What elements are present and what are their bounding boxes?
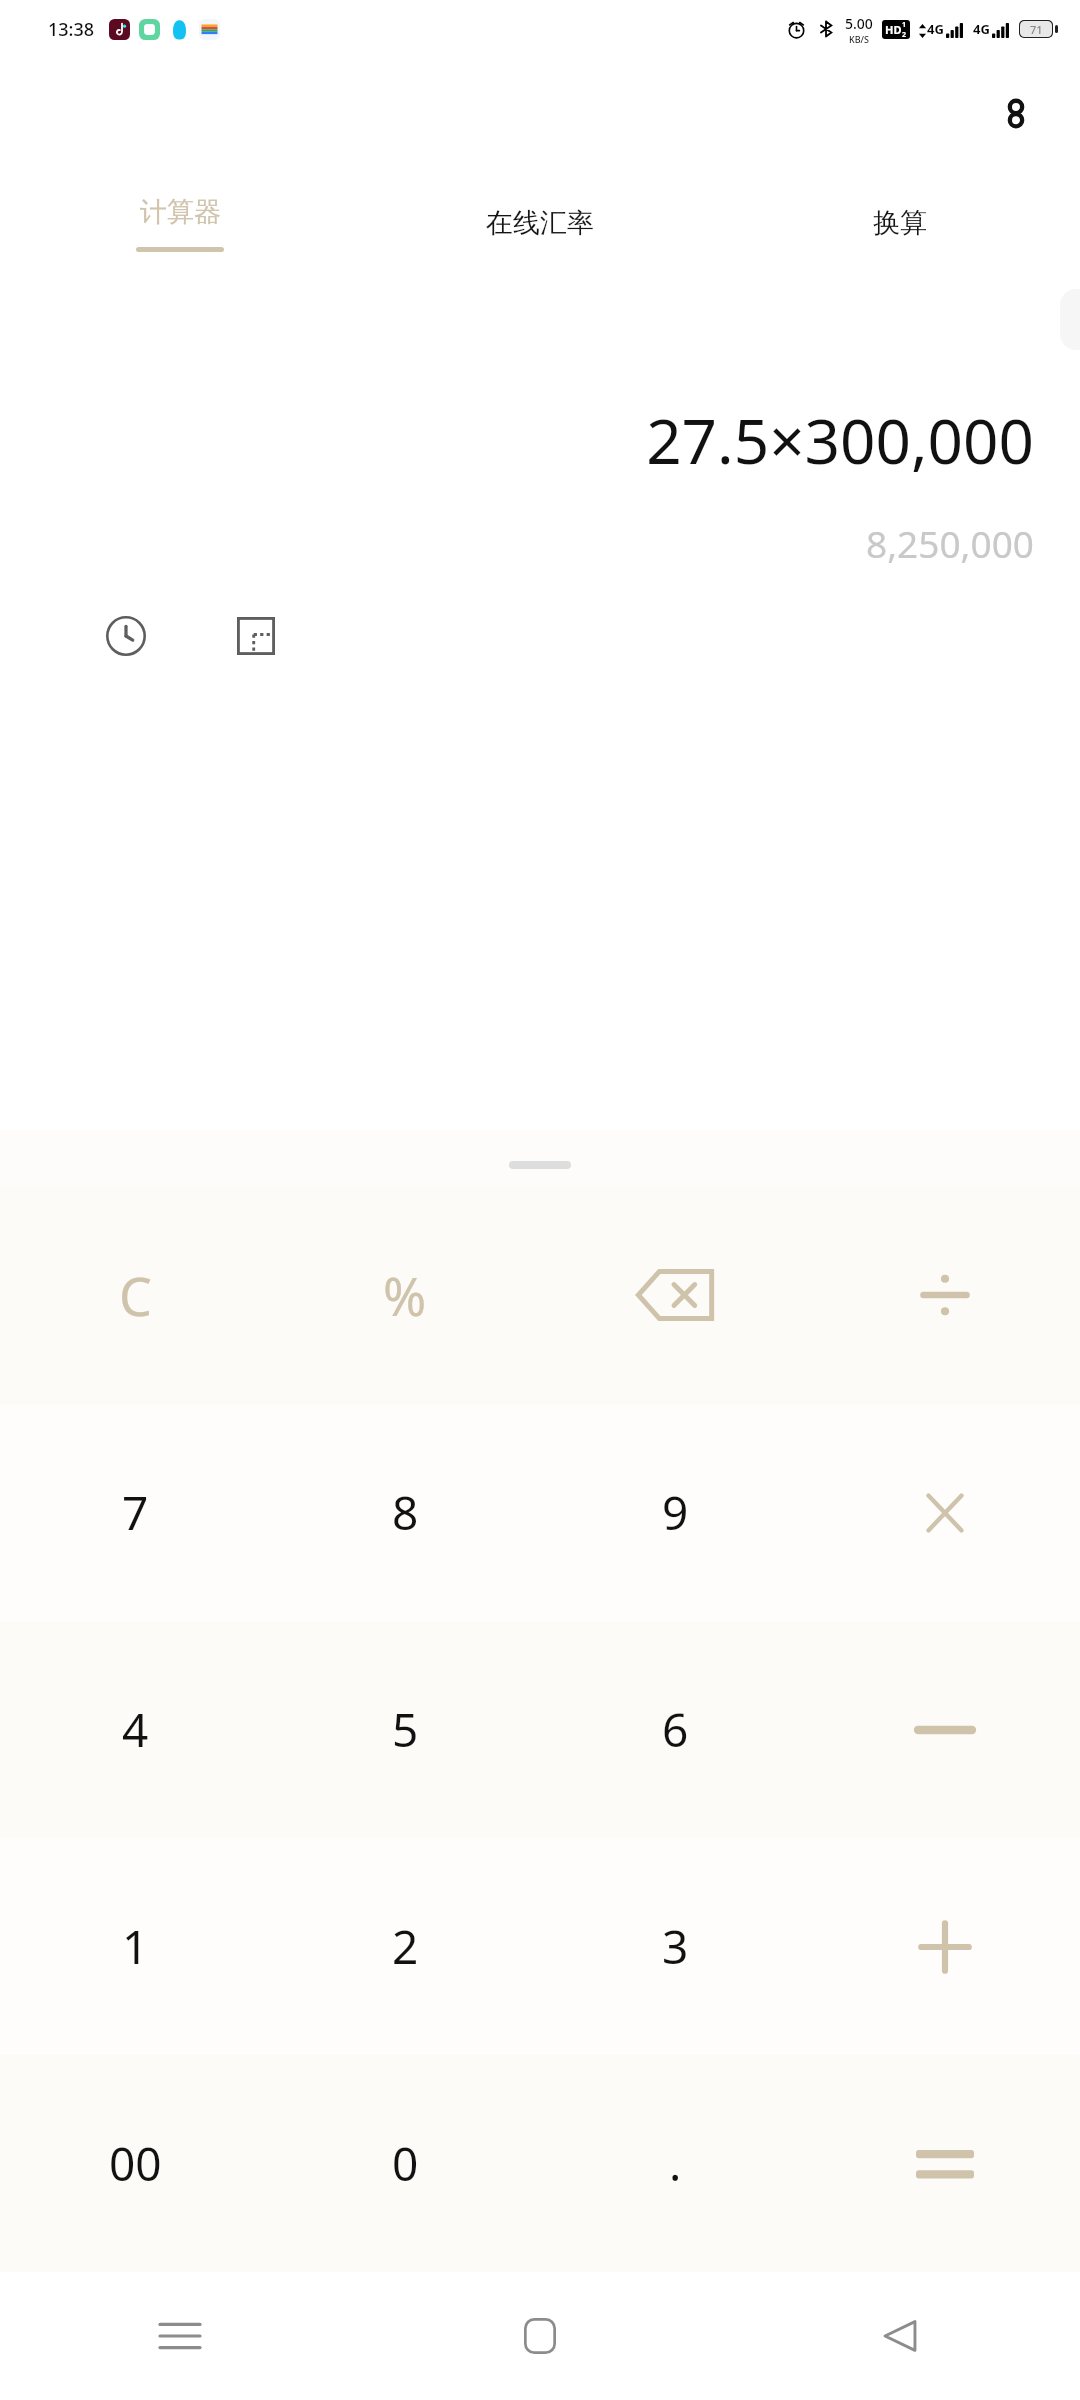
staticText: 0 xyxy=(392,2132,419,2195)
staticText: 4G xyxy=(973,20,990,38)
button[interactable]: Multiply xyxy=(810,1404,1080,1621)
staticText: HD xyxy=(885,22,902,37)
staticText: . xyxy=(669,2132,682,2195)
button[interactable]: 9 xyxy=(540,1404,810,1621)
staticText: 71 xyxy=(1030,22,1043,37)
staticText: 2 xyxy=(902,30,907,39)
button[interactable]: Divide xyxy=(810,1186,1080,1404)
staticText: 13:38 xyxy=(48,17,95,42)
button[interactable]: Add xyxy=(810,1838,1080,2055)
button[interactable]: . xyxy=(540,2055,810,2272)
staticText: 8,250,000 xyxy=(866,518,1034,568)
button[interactable]: 3 xyxy=(540,1838,810,2055)
button[interactable]: 00 xyxy=(0,2055,270,2272)
staticText: 1 xyxy=(122,1915,149,1978)
button[interactable]: Equals xyxy=(810,2055,1080,2272)
button[interactable]: 6 xyxy=(540,1621,810,1838)
button[interactable]: 8 xyxy=(270,1404,540,1621)
button[interactable]: C xyxy=(0,1186,270,1404)
staticText: 8 xyxy=(392,1481,419,1544)
staticText: 7 xyxy=(122,1481,149,1544)
button[interactable]: History xyxy=(92,602,160,670)
button[interactable]: 2 xyxy=(270,1838,540,2055)
button[interactable]: Backspace xyxy=(540,1186,810,1404)
staticText: 2 xyxy=(392,1915,419,1978)
button[interactable]: Memory xyxy=(222,602,290,670)
button[interactable]: 计算器 xyxy=(0,168,360,278)
staticText: 5 xyxy=(392,1698,419,1761)
staticText: % xyxy=(383,1260,427,1331)
button[interactable]: Home xyxy=(360,2272,720,2400)
button[interactable]: 5 xyxy=(270,1621,540,1838)
button[interactable]: Back xyxy=(720,2272,1080,2400)
button[interactable]: Subtract xyxy=(810,1621,1080,1838)
button[interactable]: % xyxy=(270,1186,540,1404)
staticText: 4 xyxy=(122,1698,149,1761)
staticText: 计算器 xyxy=(140,195,221,229)
staticText: 6 xyxy=(662,1698,689,1761)
staticText: KB/S xyxy=(849,33,869,45)
staticText: 9 xyxy=(662,1481,689,1544)
staticText: 在线汇率 xyxy=(486,206,594,240)
button[interactable]: 1 xyxy=(0,1838,270,2055)
staticText: C xyxy=(119,1260,152,1331)
staticText: 27.5×300,000 xyxy=(646,398,1034,482)
button[interactable]: 4 xyxy=(0,1621,270,1838)
button[interactable]: Recent apps xyxy=(0,2272,360,2400)
staticText: 3 xyxy=(662,1915,689,1978)
button[interactable]: 0 xyxy=(270,2055,540,2272)
staticText: 1 xyxy=(902,20,907,30)
button[interactable]: 换算 xyxy=(720,168,1080,278)
staticText: 00 xyxy=(109,2132,162,2195)
staticText: 5.00 xyxy=(845,14,873,33)
staticText: 4G xyxy=(927,20,944,38)
staticText: 换算 xyxy=(873,206,927,240)
button[interactable]: 在线汇率 xyxy=(360,168,720,278)
button[interactable]: More options xyxy=(988,85,1044,141)
button[interactable]: 7 xyxy=(0,1404,270,1621)
